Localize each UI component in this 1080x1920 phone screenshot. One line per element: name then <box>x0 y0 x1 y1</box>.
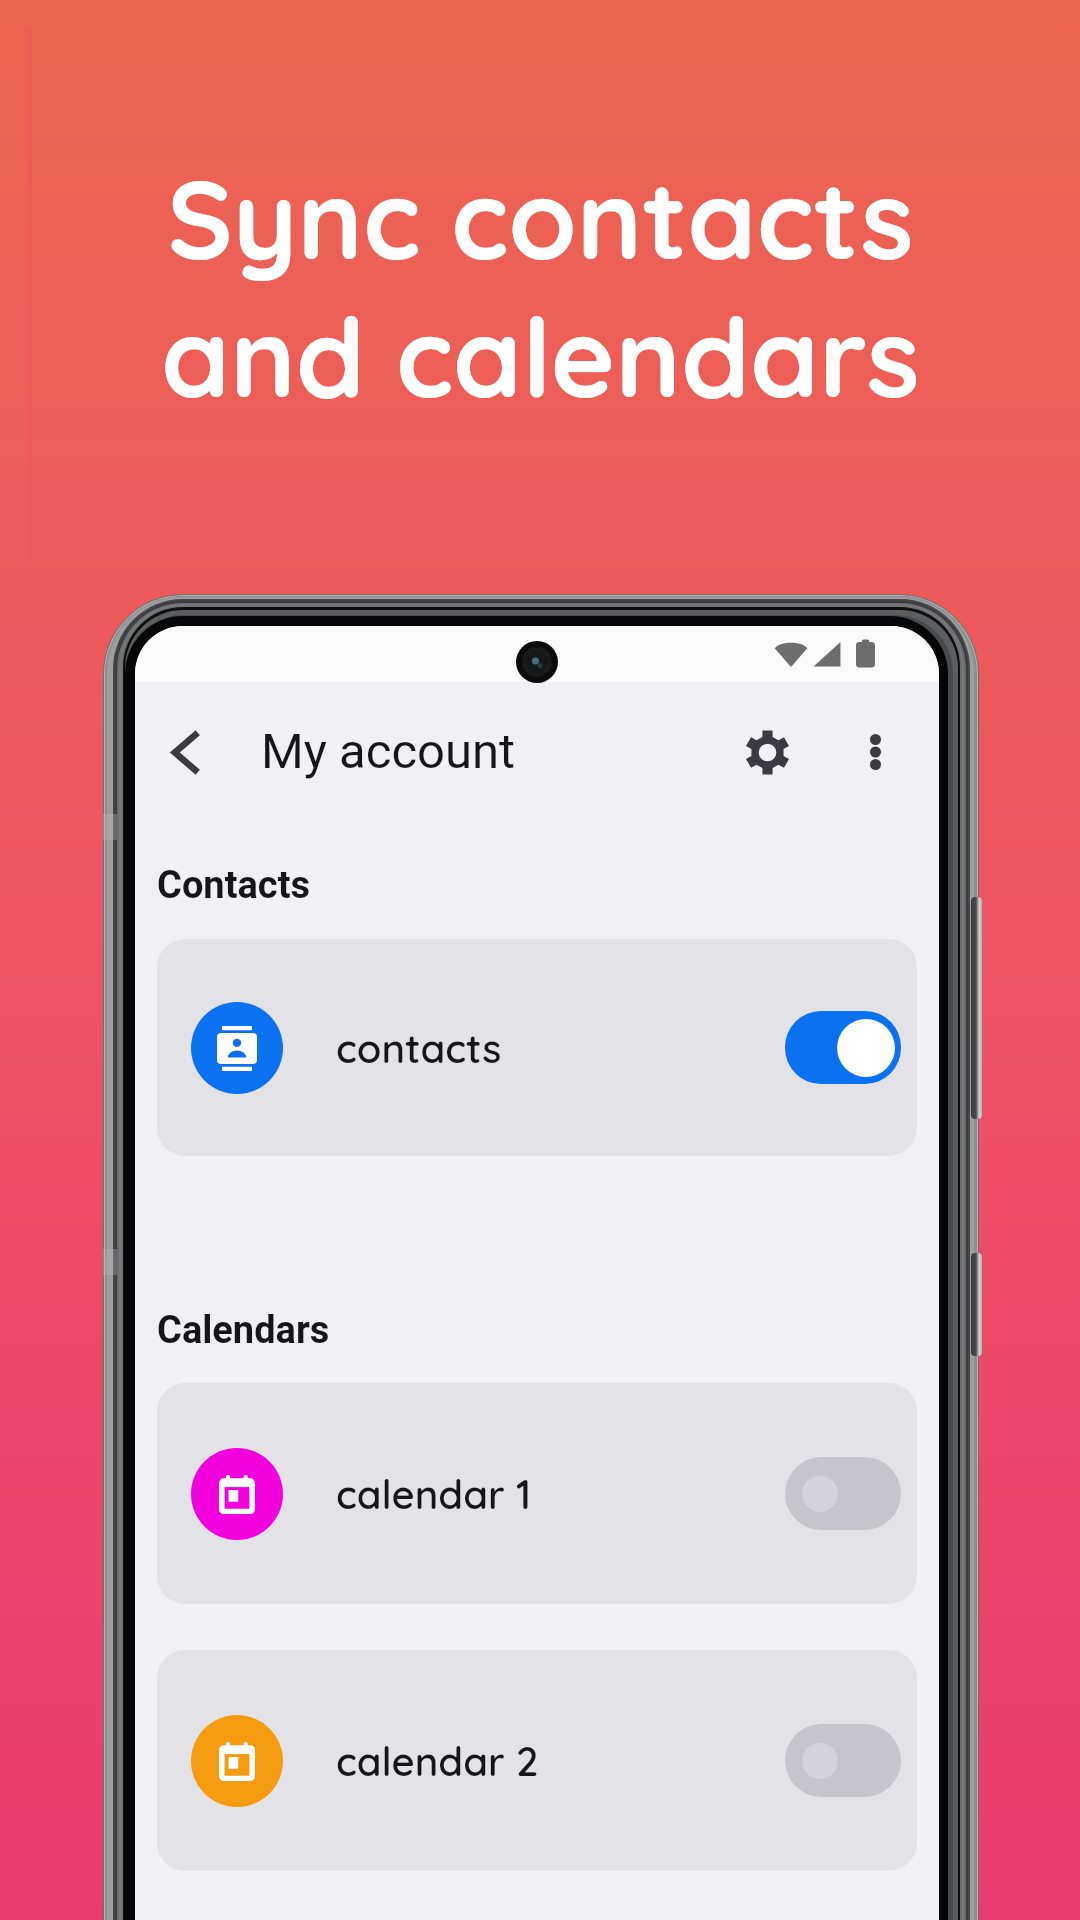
staticText: Sync contacts <box>167 149 914 287</box>
staticText: calendar 1 <box>336 1469 532 1519</box>
staticText: Calendars <box>157 1308 330 1353</box>
button[interactable]: Back <box>151 717 221 787</box>
button[interactable]: contacts <box>157 939 917 1156</box>
staticText: Contacts <box>157 863 311 908</box>
button[interactable]: calendar 2 <box>157 1650 917 1871</box>
button[interactable]: More options <box>843 720 907 784</box>
button[interactable]: Toggle calendar 1 <box>785 1457 901 1530</box>
staticText: and calendars <box>161 287 920 425</box>
button[interactable]: Toggle calendar 2 <box>785 1724 901 1797</box>
staticText: calendar 2 <box>336 1736 539 1786</box>
button[interactable]: calendar 1 <box>157 1383 917 1604</box>
button[interactable]: Toggle contacts <box>785 1011 901 1084</box>
staticText: contacts <box>336 1023 502 1073</box>
button[interactable]: Settings <box>731 716 803 788</box>
staticText: My account <box>261 723 516 780</box>
